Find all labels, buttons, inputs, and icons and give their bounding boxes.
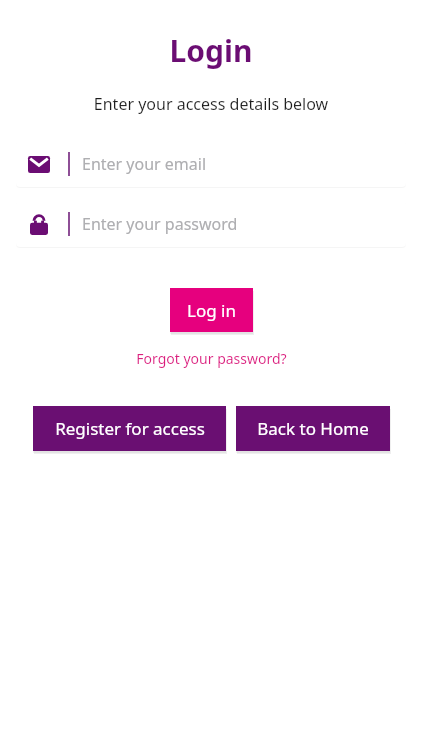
button[interactable]: Email — [16, 141, 406, 187]
staticText: Enter your email — [82, 153, 207, 175]
other: Password — [24, 209, 54, 239]
staticText: Enter your access details below — [0, 93, 422, 115]
button[interactable]: Password — [16, 201, 406, 247]
staticText: Forgot your password? — [136, 349, 287, 368]
staticText: Enter your password — [82, 213, 238, 235]
button[interactable]: Log in — [170, 288, 253, 332]
other: Email — [24, 149, 54, 179]
button[interactable]: Forgot your password? — [130, 346, 293, 371]
staticText: Login — [0, 30, 422, 71]
staticText: Log in — [187, 299, 236, 322]
staticText: Back to Home — [257, 417, 369, 440]
staticText: Register for access — [55, 417, 205, 440]
button[interactable]: Back to Home — [236, 406, 390, 451]
button[interactable]: Register for access — [33, 406, 226, 451]
